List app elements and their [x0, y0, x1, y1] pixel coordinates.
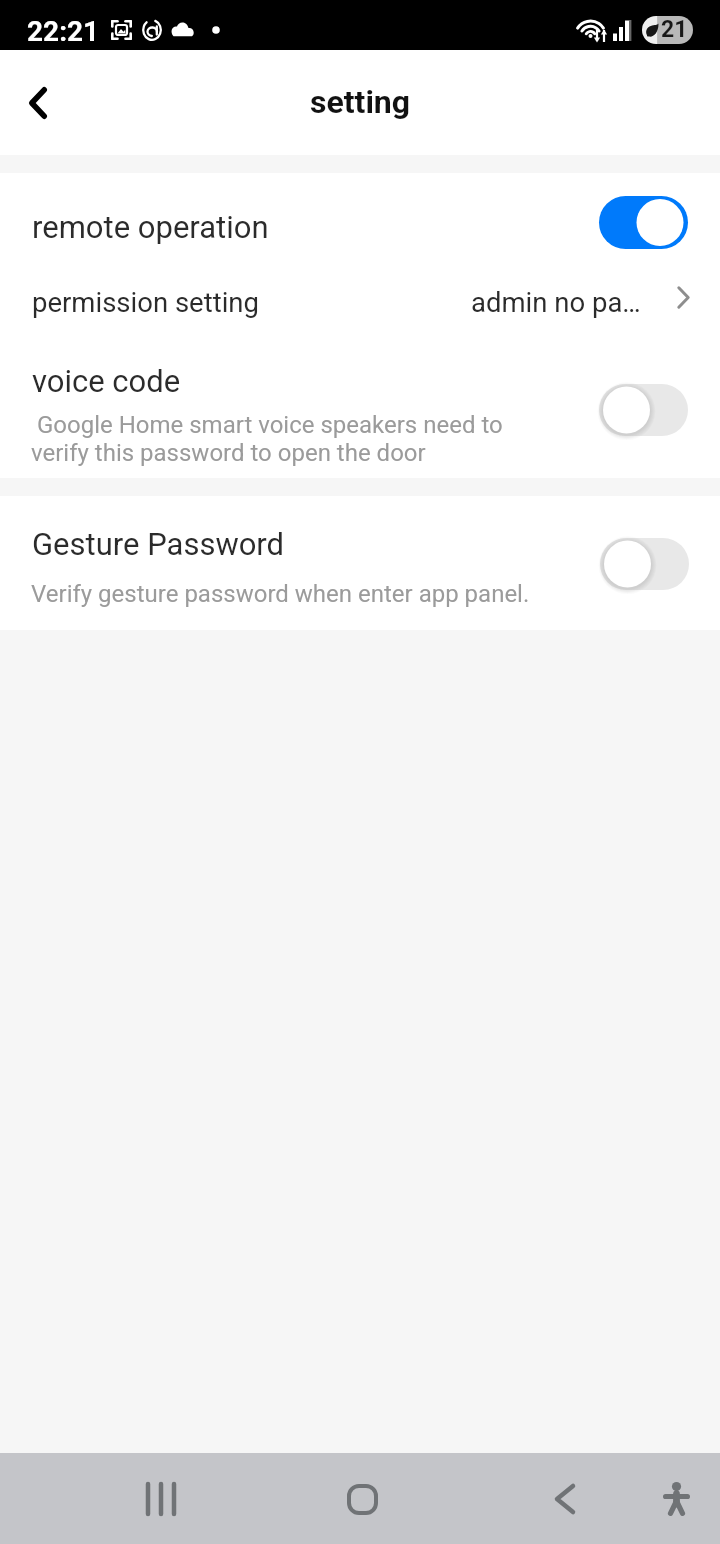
- staticText: setting: [310, 83, 411, 121]
- staticText: voice code: [32, 363, 181, 399]
- staticText: admin no pa…: [471, 286, 641, 318]
- staticText: 22:21: [27, 15, 100, 48]
- staticText: 21: [661, 16, 688, 43]
- button[interactable]: Accessibility: [641, 1464, 711, 1534]
- staticText: permission setting: [32, 286, 259, 318]
- button[interactable]: Gesture Password, off: [600, 538, 689, 590]
- button[interactable]: Back: [525, 1459, 605, 1539]
- button[interactable]: Home: [322, 1459, 402, 1539]
- button[interactable]: Gesture Password: [0, 496, 720, 630]
- button[interactable]: voice code, off: [599, 384, 688, 436]
- button[interactable]: permission setting: [0, 259, 720, 348]
- button[interactable]: Recent apps: [121, 1459, 201, 1539]
- staticText: Google Home smart voice speakers need to…: [31, 411, 503, 467]
- staticText: Verify gesture password when enter app p…: [31, 580, 530, 608]
- button[interactable]: Back: [2, 67, 74, 139]
- button[interactable]: remote operation: [0, 173, 720, 259]
- staticText: Gesture Password: [32, 526, 285, 562]
- button[interactable]: remote operation, on: [599, 196, 688, 249]
- button[interactable]: voice code: [0, 348, 720, 478]
- staticText: remote operation: [32, 209, 269, 245]
